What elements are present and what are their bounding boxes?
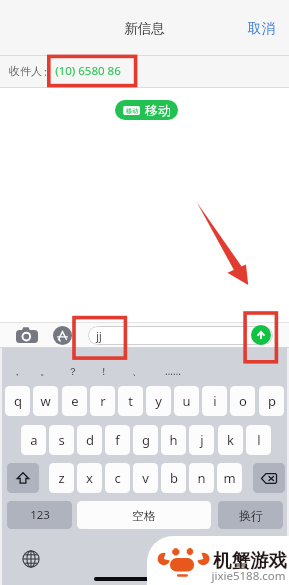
button[interactable]: 新信息 <box>124 20 165 37</box>
staticText: o <box>239 392 247 410</box>
button[interactable]: z <box>49 463 74 493</box>
staticText: k <box>227 431 234 449</box>
button[interactable]: r <box>90 386 115 416</box>
staticText: w <box>40 392 51 410</box>
staticText: m <box>223 469 236 487</box>
button[interactable]: j <box>189 425 214 455</box>
staticText: j <box>200 431 204 449</box>
button[interactable]: Camera <box>15 326 38 344</box>
staticText: 123 <box>30 507 50 523</box>
staticText: 空格 <box>132 508 156 523</box>
button[interactable]: i <box>202 386 227 416</box>
staticText: q <box>14 392 22 410</box>
staticText: (10) 6580 86 <box>55 63 121 79</box>
button[interactable]: 123 <box>7 501 72 529</box>
button[interactable]: e <box>62 386 87 416</box>
button[interactable]: m <box>217 463 242 493</box>
button[interactable]: 。 <box>32 360 58 382</box>
staticText: x <box>86 469 93 487</box>
button[interactable]: k <box>218 425 243 455</box>
staticText: 新信息 <box>124 20 165 37</box>
staticText: v <box>142 469 149 487</box>
button[interactable]: ？ <box>60 360 86 382</box>
button[interactable]: 移动 <box>115 100 178 120</box>
staticText: z <box>58 469 65 487</box>
staticText: 收件人 <box>9 64 42 78</box>
staticText: b <box>170 469 178 487</box>
staticText: d <box>86 431 94 449</box>
staticText: 。 <box>40 365 50 378</box>
staticText: h <box>169 431 178 449</box>
staticText: y <box>155 392 162 410</box>
button[interactable]: 换行 <box>218 501 283 529</box>
button[interactable]: t <box>118 386 143 416</box>
button[interactable]: 、 <box>124 360 150 382</box>
button[interactable]: u <box>174 386 199 416</box>
staticText: …… <box>165 364 181 378</box>
staticText: f <box>115 431 120 449</box>
staticText: c <box>114 469 121 487</box>
staticText: 、 <box>132 365 142 378</box>
staticText: n <box>197 469 206 487</box>
button[interactable]: Backspace <box>253 463 285 493</box>
staticText: ！ <box>99 365 109 378</box>
button[interactable]: q <box>5 386 30 416</box>
button[interactable]: 空格 <box>77 501 211 529</box>
staticText: jj <box>96 329 102 343</box>
button[interactable]: a <box>21 425 46 455</box>
staticText: 机蟹游戏 <box>213 549 287 572</box>
staticText: 取消 <box>248 20 275 37</box>
staticText: r <box>100 392 106 410</box>
button[interactable]: …… <box>160 360 186 382</box>
staticText: jixie5188.com <box>211 568 286 584</box>
staticText: a <box>30 431 38 449</box>
button[interactable]: 取消 <box>248 20 275 37</box>
button[interactable]: c <box>105 463 130 493</box>
button[interactable]: ！ <box>91 360 117 382</box>
staticText: l <box>257 431 261 449</box>
button[interactable]: f <box>105 425 130 455</box>
staticText: u <box>182 392 191 410</box>
button[interactable]: y <box>146 386 171 416</box>
staticText: : <box>44 64 47 79</box>
button[interactable]: Change keyboard <box>21 549 41 569</box>
button[interactable]: b <box>161 463 186 493</box>
staticText: g <box>142 431 150 449</box>
staticText: 移动 <box>145 102 171 118</box>
button[interactable]: p <box>259 386 284 416</box>
button[interactable]: d <box>77 425 102 455</box>
button[interactable]: l <box>246 425 271 455</box>
button[interactable]: Send <box>251 325 271 345</box>
button[interactable]: w <box>33 386 58 416</box>
staticText: 移动 <box>126 107 138 115</box>
staticText: ， <box>12 365 22 378</box>
button[interactable]: ， <box>4 360 30 382</box>
staticText: ？ <box>68 365 78 378</box>
button[interactable]: n <box>189 463 214 493</box>
button[interactable]: x <box>77 463 102 493</box>
button[interactable]: h <box>161 425 186 455</box>
staticText: s <box>58 431 65 449</box>
button[interactable]: s <box>49 425 74 455</box>
button[interactable]: jj <box>88 326 273 345</box>
button[interactable]: g <box>133 425 158 455</box>
staticText: t <box>128 392 133 410</box>
button[interactable]: v <box>133 463 158 493</box>
staticText: i <box>213 392 217 410</box>
button[interactable]: o <box>230 386 255 416</box>
staticText: e <box>71 392 79 410</box>
staticText: p <box>268 392 276 410</box>
staticText: 换行 <box>239 508 263 523</box>
button[interactable]: App Store <box>53 326 72 345</box>
button[interactable]: Shift <box>7 463 39 493</box>
